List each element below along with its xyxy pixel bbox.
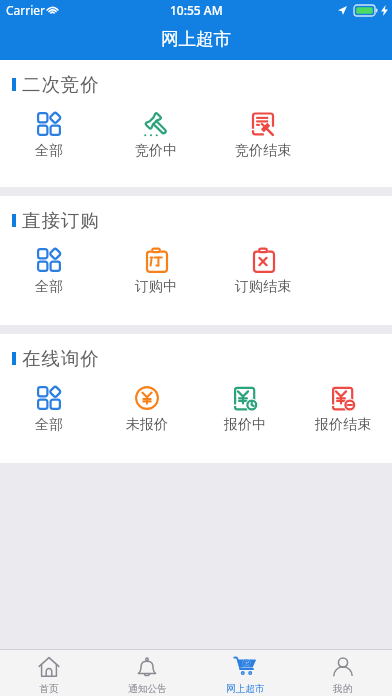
- staticText: 全部: [35, 278, 63, 296]
- staticText: 订购结束: [235, 278, 291, 296]
- button[interactable]: 竞价中: [107, 112, 205, 160]
- staticText: 竞价结束: [235, 142, 291, 160]
- button[interactable]: 全部: [0, 112, 98, 160]
- staticText: 我的: [333, 683, 353, 695]
- staticText: 在线询价: [22, 347, 100, 370]
- button[interactable]: 竞价结束: [214, 112, 312, 160]
- staticText: 竞价中: [135, 142, 177, 160]
- button[interactable]: 订购中: [107, 248, 205, 296]
- staticText: 订购中: [135, 278, 177, 296]
- staticText: 10:55 AM: [170, 2, 223, 18]
- button[interactable]: 我的: [294, 650, 392, 696]
- staticText: 网上超市: [161, 28, 231, 50]
- staticText: 首页: [39, 683, 59, 695]
- staticText: 二次竞价: [22, 73, 100, 96]
- button[interactable]: 报价结束: [294, 386, 392, 434]
- staticText: 未报价: [126, 416, 168, 434]
- button[interactable]: 首页: [0, 650, 98, 696]
- button[interactable]: 未报价: [98, 386, 196, 434]
- staticText: 全部: [35, 416, 63, 434]
- button[interactable]: 订购结束: [214, 248, 312, 296]
- staticText: 全部: [35, 142, 63, 160]
- staticText: 报价结束: [315, 416, 371, 434]
- staticText: 报价中: [224, 416, 266, 434]
- staticText: 直接订购: [22, 209, 100, 232]
- staticText: Carrier: [6, 2, 46, 18]
- staticText: 通知公告: [128, 683, 167, 695]
- staticText: 网上超市: [226, 683, 265, 695]
- button[interactable]: 通知公告: [98, 650, 196, 696]
- button[interactable]: 网上超市: [196, 650, 294, 696]
- button[interactable]: 全部: [0, 386, 98, 434]
- button[interactable]: 全部: [0, 248, 98, 296]
- button[interactable]: 报价中: [196, 386, 294, 434]
